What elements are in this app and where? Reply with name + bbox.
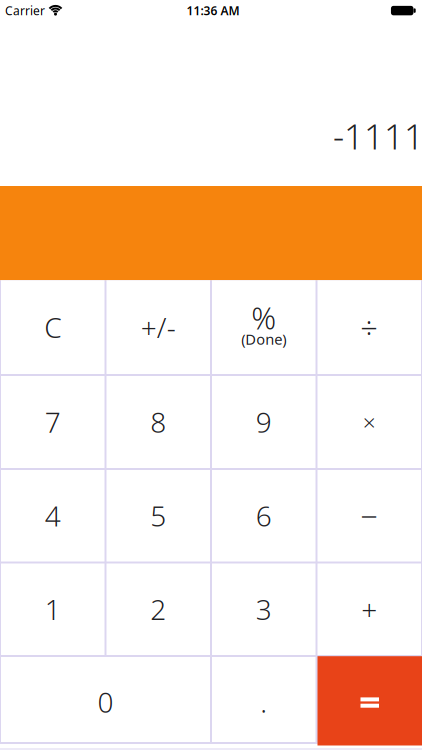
staticText: 11:36 AM [186,2,239,18]
button[interactable]: 3 [212,563,315,655]
staticText: 9 [256,403,272,441]
staticText: ÷ [360,307,378,347]
button[interactable]: − [317,470,421,561]
button[interactable]: + [317,563,421,655]
staticText: × [363,407,376,437]
button[interactable]: % [212,280,315,374]
button[interactable]: +/- [106,280,210,374]
button[interactable]: ÷ [317,280,421,374]
button[interactable]: 5 [106,470,210,561]
button[interactable]: C [1,280,104,374]
staticText: C [44,309,61,346]
button[interactable]: 9 [212,376,315,468]
staticText: -1111 [333,113,422,159]
staticText: +/- [141,309,176,346]
staticText: Carrier [5,2,45,18]
button[interactable] [317,656,422,745]
staticText: + [361,591,377,628]
staticText: 8 [150,403,166,441]
button[interactable]: 1 [1,563,104,655]
staticText: − [360,495,378,536]
staticText: 6 [256,497,272,534]
staticText: (Done) [241,329,286,349]
staticText: 5 [150,497,166,534]
button[interactable]: 4 [1,470,104,561]
button[interactable]: 8 [106,376,210,468]
button[interactable]: 0 [1,657,210,742]
staticText: 1 [45,591,61,628]
staticText: 4 [45,497,61,534]
button[interactable]: . [212,657,315,742]
button[interactable]: × [317,376,421,468]
staticText: 7 [45,403,61,441]
button[interactable]: 2 [106,563,210,655]
staticText: 2 [150,591,166,628]
staticText: . [260,683,267,721]
staticText: 0 [97,683,113,721]
staticText: % [251,297,276,338]
button[interactable]: 6 [212,470,315,561]
button[interactable]: 7 [1,376,104,468]
staticText: 3 [256,591,272,628]
